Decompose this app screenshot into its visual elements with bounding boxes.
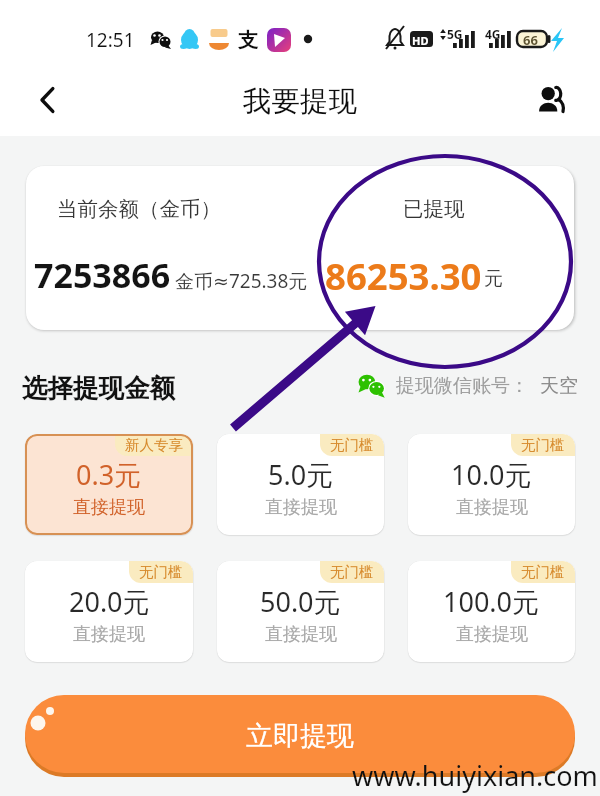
staticText: 66 xyxy=(523,31,538,49)
button[interactable]: 提现微信账号： xyxy=(358,366,578,393)
staticText: 立即提现 xyxy=(246,719,354,753)
staticText: 我要提现 xyxy=(243,84,357,120)
button[interactable]: 无门槛 xyxy=(217,561,384,662)
button[interactable]: 新人专享 xyxy=(25,434,193,535)
staticText: 选择提现金额 xyxy=(22,372,175,404)
button[interactable]: Contacts xyxy=(530,80,574,124)
button[interactable]: 立即提现 xyxy=(25,695,575,773)
button[interactable]: 无门槛 xyxy=(408,434,575,535)
staticText: 7253866 xyxy=(34,252,171,298)
staticText: 金币≈725.38元 xyxy=(175,268,308,294)
staticText: 天空 xyxy=(540,374,578,398)
staticText: 元 xyxy=(484,267,503,291)
staticText: 直接提现 xyxy=(73,496,145,519)
staticText: 0.3元 xyxy=(76,456,142,493)
button[interactable]: 无门槛 xyxy=(217,434,384,535)
staticText: 86253.30 xyxy=(325,251,482,301)
staticText: 当前余额（金币） xyxy=(57,196,221,222)
staticText: 无门槛 xyxy=(330,563,374,581)
staticText: HD xyxy=(412,33,429,48)
staticText: 无门槛 xyxy=(139,563,183,581)
staticText: 100.0元 xyxy=(443,583,540,620)
staticText: 直接提现 xyxy=(265,496,337,519)
staticText: 5.0元 xyxy=(268,456,334,493)
staticText: 10.0元 xyxy=(451,456,532,493)
staticText: 5G xyxy=(447,26,463,42)
staticText: 无门槛 xyxy=(330,436,374,454)
staticText: www.huiyixian.com xyxy=(352,757,598,794)
staticText: 12:51 xyxy=(86,27,135,53)
staticText: 已提现 xyxy=(403,196,465,222)
staticText: 无门槛 xyxy=(521,563,565,581)
button[interactable]: Back xyxy=(26,80,70,124)
staticText: 20.0元 xyxy=(69,583,150,620)
staticText: 提现微信账号： xyxy=(396,374,529,398)
staticText: 直接提现 xyxy=(456,623,528,646)
staticText: 直接提现 xyxy=(265,623,337,646)
button[interactable]: 无门槛 xyxy=(25,561,193,662)
staticText: 直接提现 xyxy=(456,496,528,519)
staticText: 新人专享 xyxy=(125,436,183,454)
staticText: 无门槛 xyxy=(521,436,565,454)
button[interactable]: 无门槛 xyxy=(408,561,575,662)
staticText: 50.0元 xyxy=(260,583,341,620)
staticText: 4G xyxy=(485,26,501,42)
staticText: 直接提现 xyxy=(73,623,145,646)
staticText: 支 xyxy=(238,28,258,53)
